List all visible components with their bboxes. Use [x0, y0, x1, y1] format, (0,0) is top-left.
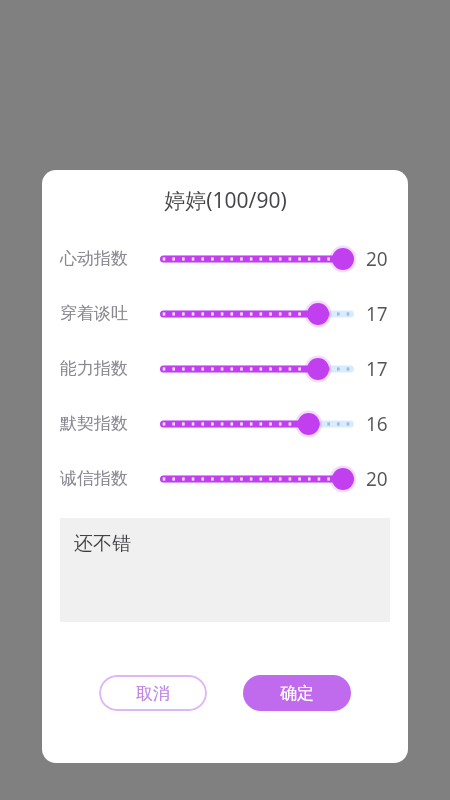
- button[interactable]: 还不错: [60, 518, 390, 622]
- other: 默契指数 slider: [160, 411, 354, 437]
- button[interactable]: 确定: [243, 675, 351, 711]
- staticText: 取消: [136, 683, 170, 704]
- staticText: 穿着谈吐: [60, 303, 150, 324]
- button[interactable]: 默契指数: [42, 396, 408, 451]
- staticText: 17: [366, 356, 400, 382]
- button[interactable]: 心动指数: [42, 231, 408, 286]
- staticText: 能力指数: [60, 358, 150, 379]
- other: 心动指数 slider: [160, 246, 354, 272]
- staticText: 心动指数: [60, 248, 150, 269]
- staticText: 16: [366, 411, 400, 437]
- staticText: 还不错: [74, 532, 131, 556]
- button[interactable]: 诚信指数: [42, 451, 408, 506]
- other: 能力指数 slider: [160, 356, 354, 382]
- staticText: 默契指数: [60, 413, 150, 434]
- staticText: 17: [366, 301, 400, 327]
- staticText: 20: [366, 246, 400, 272]
- other: 诚信指数 slider: [160, 466, 354, 492]
- staticText: 确定: [280, 683, 314, 704]
- other: 穿着谈吐 slider: [160, 301, 354, 327]
- staticText: 20: [366, 466, 400, 492]
- button[interactable]: 取消: [99, 675, 207, 711]
- staticText: 诚信指数: [60, 468, 150, 489]
- button[interactable]: 穿着谈吐: [42, 286, 408, 341]
- staticText: 婷婷(100/90): [164, 186, 287, 215]
- staticText: 嫦嫦: [95, 165, 133, 189]
- button[interactable]: 能力指数: [42, 341, 408, 396]
